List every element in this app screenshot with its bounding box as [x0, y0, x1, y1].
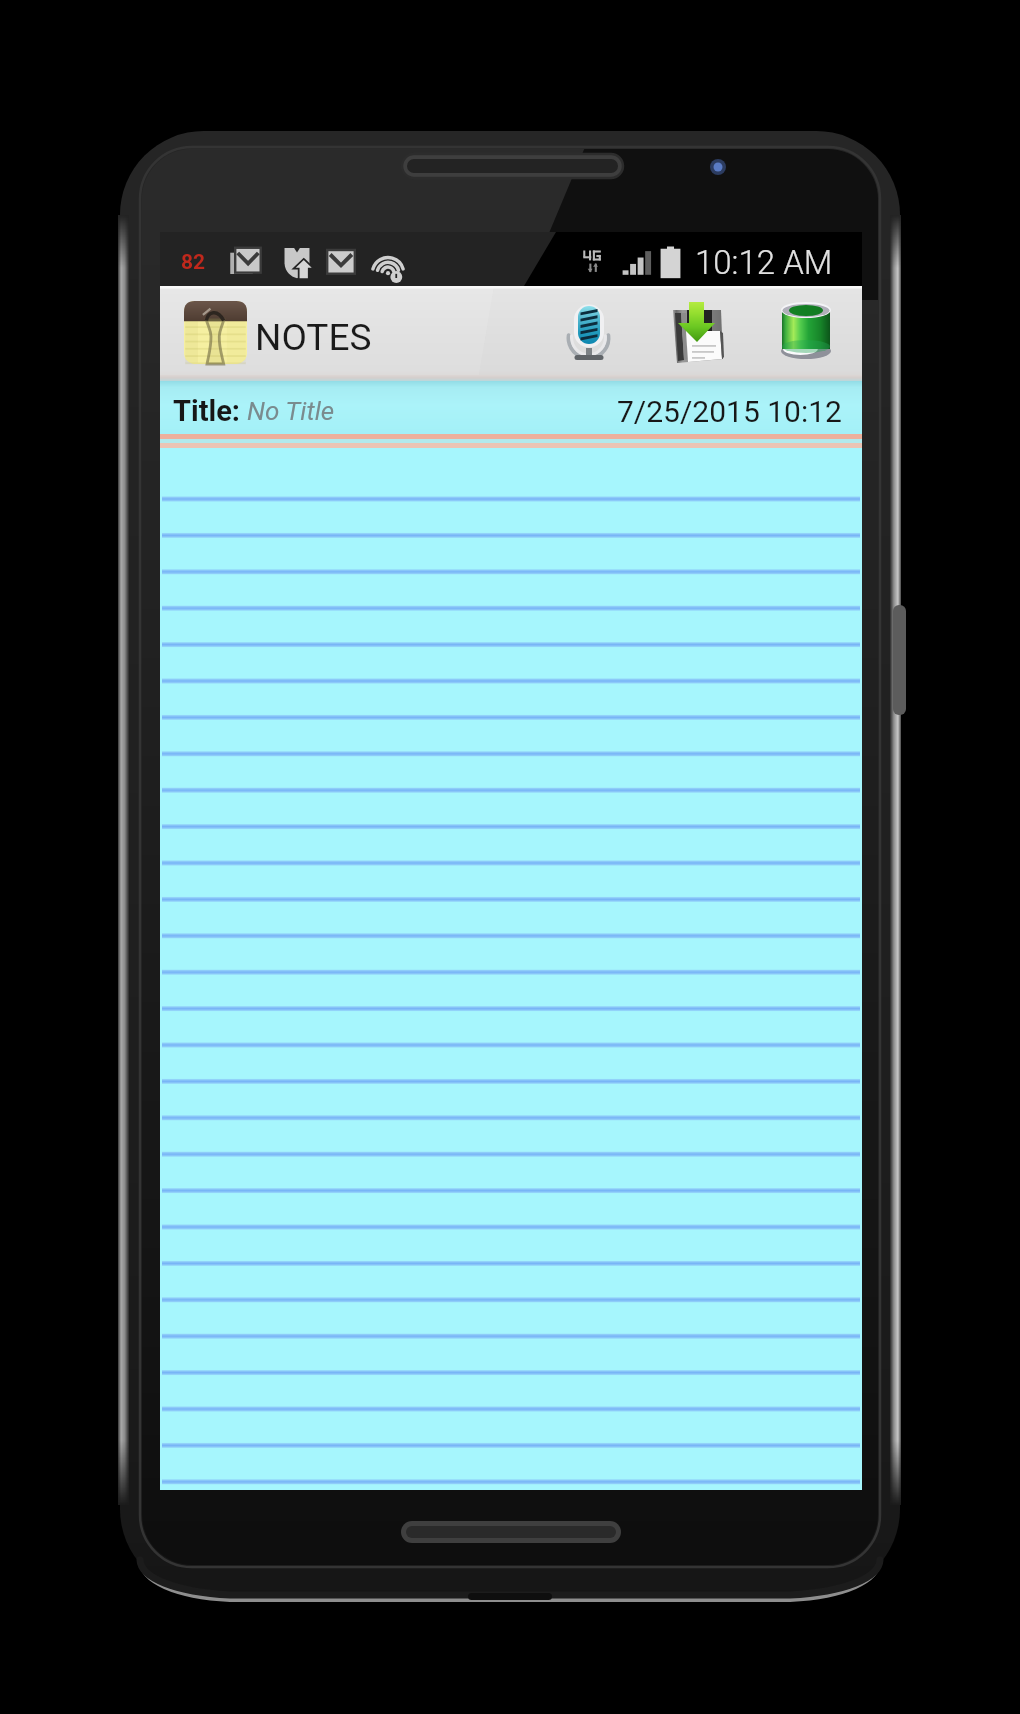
button[interactable] [160, 378, 600, 437]
button[interactable]: Notes database [760, 288, 846, 374]
button[interactable]: Note text [160, 451, 862, 1490]
staticText: Title: [173, 394, 240, 428]
staticText: NOTES [255, 316, 372, 359]
staticText: 82 [181, 250, 206, 275]
staticText: 7/25/2015 10:12 [617, 394, 842, 429]
button[interactable]: Notes app [170, 288, 390, 374]
button[interactable]: Voice note [552, 288, 638, 374]
staticText: No Title [247, 396, 335, 426]
staticText: 10:12 AM [695, 243, 833, 282]
button[interactable]: Save note [652, 288, 738, 374]
